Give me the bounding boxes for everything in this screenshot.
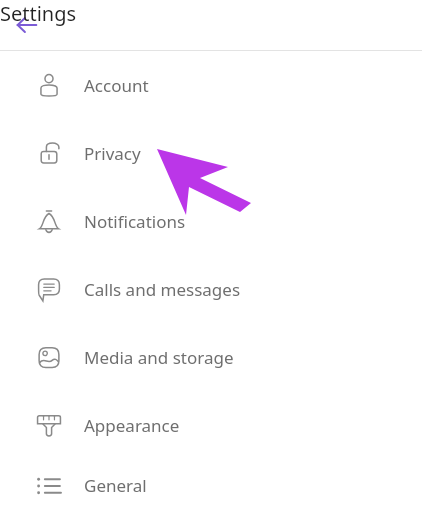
staticText: Appearance [84,414,180,437]
button[interactable]: General [0,459,422,512]
button[interactable]: Settings [0,0,160,50]
button[interactable]: Media and storage [0,323,422,391]
staticText: General [84,474,147,497]
staticText: Notifications [84,210,186,233]
button[interactable]: Privacy [0,119,422,187]
button[interactable]: Appearance [0,391,422,459]
button[interactable]: Back [0,0,54,50]
button[interactable]: Account [0,51,422,119]
staticText: Account [84,74,149,97]
staticText: Privacy [84,142,141,165]
staticText: Media and storage [84,346,234,369]
button[interactable]: Calls and messages [0,255,422,323]
button[interactable]: Notifications [0,187,422,255]
staticText: Calls and messages [84,278,241,301]
